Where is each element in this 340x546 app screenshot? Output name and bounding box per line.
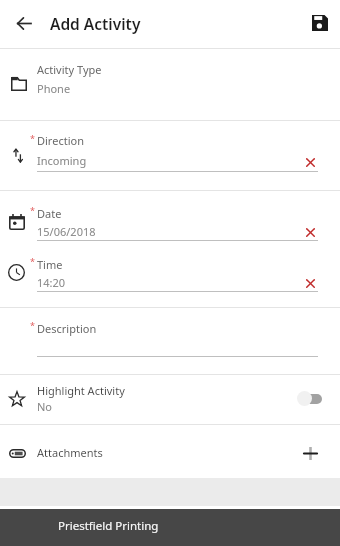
button[interactable] bbox=[0, 191, 340, 241]
staticText: Direction bbox=[37, 133, 84, 148]
staticText: Phone bbox=[37, 81, 71, 96]
button[interactable]: Back bbox=[10, 9, 38, 37]
button[interactable]: Clear Date bbox=[301, 223, 319, 241]
button[interactable]: Highlight Activity bbox=[292, 387, 328, 411]
staticText: * bbox=[30, 255, 35, 267]
button[interactable] bbox=[0, 242, 340, 307]
staticText: * bbox=[30, 132, 35, 144]
staticText: Time bbox=[37, 257, 63, 272]
button[interactable]: Add attachment bbox=[299, 442, 321, 464]
staticText: * bbox=[30, 204, 35, 216]
button[interactable]: Clear Direction bbox=[301, 153, 319, 171]
staticText: Description bbox=[37, 321, 97, 336]
button[interactable] bbox=[0, 49, 340, 120]
staticText: No bbox=[37, 399, 53, 414]
button[interactable] bbox=[0, 121, 340, 190]
button[interactable] bbox=[0, 425, 340, 478]
staticText: Highlight Activity bbox=[37, 383, 125, 398]
button[interactable] bbox=[0, 375, 340, 424]
staticText: Incoming bbox=[37, 153, 87, 168]
staticText: Add Activity bbox=[50, 13, 141, 34]
button[interactable]: Clear Time bbox=[301, 274, 319, 292]
staticText: * bbox=[30, 319, 35, 331]
staticText: 14:20 bbox=[37, 275, 66, 290]
staticText: Activity Type bbox=[37, 62, 102, 77]
staticText: Priestfield Printing bbox=[58, 518, 159, 534]
staticText: 15/06/2018 bbox=[37, 224, 96, 239]
button[interactable]: Save bbox=[306, 9, 334, 37]
staticText: Attachments bbox=[37, 445, 103, 460]
button[interactable] bbox=[0, 308, 340, 374]
staticText: Date bbox=[37, 206, 62, 221]
